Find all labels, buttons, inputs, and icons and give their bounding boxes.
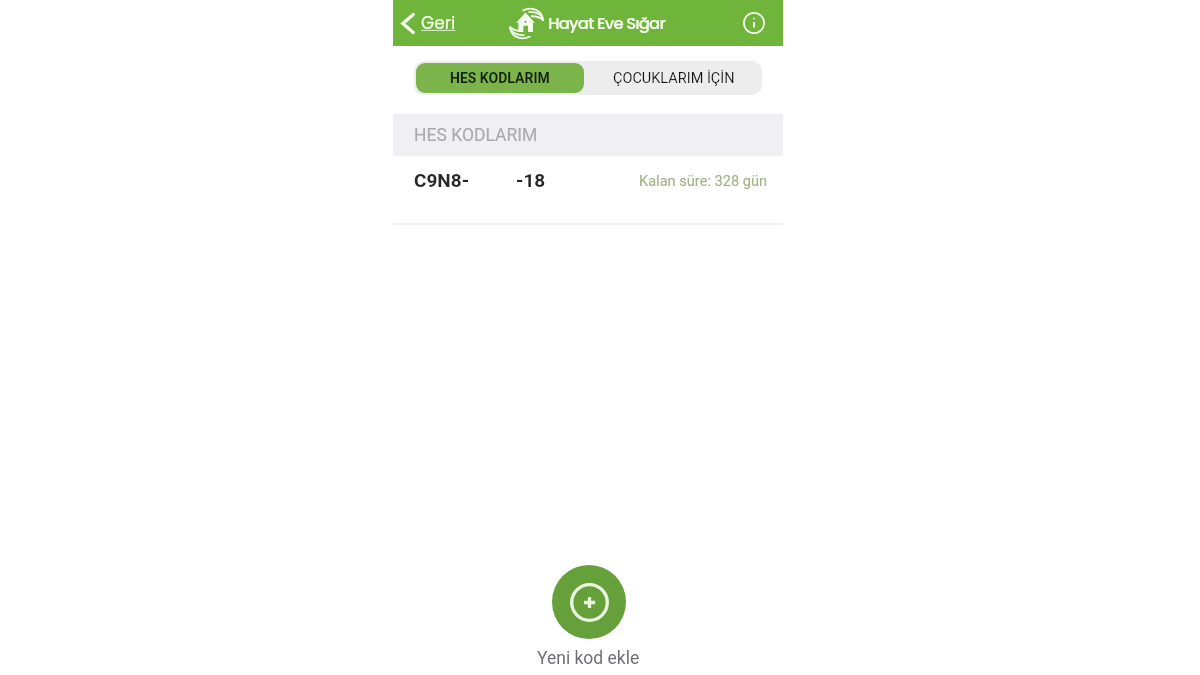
- other: Yeni kod ekle: [552, 565, 626, 639]
- staticText: HES KODLARIM: [450, 70, 550, 86]
- staticText: Geri: [421, 11, 456, 35]
- staticText: Kalan süre: 328 gün: [639, 172, 768, 189]
- button[interactable]: HES KODLARIM: [416, 63, 584, 93]
- button[interactable]: Geri: [397, 5, 460, 41]
- staticText: Yeni kod ekle: [537, 648, 640, 669]
- staticText: C9N8-: [414, 169, 470, 191]
- button[interactable]: C9N8-: [393, 156, 783, 220]
- staticText: HES KODLARIM: [414, 125, 538, 146]
- button[interactable]: Yeni kod ekle: [537, 565, 640, 669]
- staticText: Hayat Eve Sığar: [548, 12, 665, 35]
- button[interactable]: ÇOCUKLARIM İÇİN: [586, 61, 762, 95]
- button[interactable]: Bilgi: [738, 7, 770, 39]
- staticText: ÇOCUKLARIM İÇİN: [613, 70, 735, 87]
- staticText: -18: [516, 169, 546, 191]
